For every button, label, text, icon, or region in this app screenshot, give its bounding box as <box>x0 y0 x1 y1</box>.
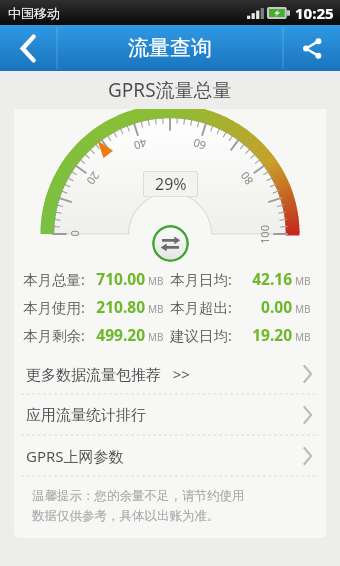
button[interactable]: Back <box>0 25 57 71</box>
staticText: MB <box>295 274 317 288</box>
button[interactable]: Switch unit <box>152 225 189 262</box>
staticText: 本月使用: <box>23 297 85 317</box>
staticText: 80 <box>237 169 256 188</box>
staticText: 42.16 <box>235 268 292 289</box>
staticText: MB <box>295 302 317 316</box>
staticText: MB <box>295 330 317 344</box>
staticText: 40 <box>132 135 149 154</box>
staticText: 建议日均: <box>170 325 232 345</box>
staticText: 本月剩余: <box>23 325 85 345</box>
staticText: 0.00 <box>235 296 292 317</box>
staticText: 710.00 <box>88 268 145 289</box>
button[interactable]: 应用流量统计排行 <box>14 395 326 435</box>
staticText: 100 <box>257 225 272 244</box>
staticText: 20 <box>84 169 103 188</box>
staticText: MB <box>148 302 170 316</box>
staticText: 499.20 <box>88 324 145 345</box>
staticText: GPRS上网参数 <box>26 446 124 466</box>
button[interactable]: 更多数据流量包推荐 >> <box>14 354 326 394</box>
staticText: 0 <box>68 230 83 237</box>
staticText: 流量查询 <box>128 35 212 61</box>
staticText: 10:25 <box>295 3 334 23</box>
staticText: 温馨提示：您的余量不足，请节约使用 <box>32 488 245 504</box>
staticText: 29% <box>155 173 187 195</box>
button[interactable]: GPRS上网参数 <box>14 436 326 476</box>
staticText: 60 <box>191 135 208 154</box>
staticText: 数据仅供参考，具体以出账为准。 <box>32 508 220 524</box>
staticText: 本月超出: <box>170 297 232 317</box>
staticText: GPRS流量总量 <box>108 77 232 103</box>
staticText: 本月日均: <box>170 269 232 289</box>
staticText: 中国移动 <box>8 5 60 21</box>
staticText: 本月总量: <box>23 269 85 289</box>
staticText: 210.80 <box>88 296 145 317</box>
staticText: 19.20 <box>235 324 292 345</box>
staticText: 应用流量统计排行 <box>26 406 146 425</box>
button[interactable]: Share <box>283 25 340 71</box>
staticText: MB <box>148 330 170 344</box>
staticText: 更多数据流量包推荐 >> <box>26 364 190 384</box>
staticText: MB <box>148 274 170 288</box>
